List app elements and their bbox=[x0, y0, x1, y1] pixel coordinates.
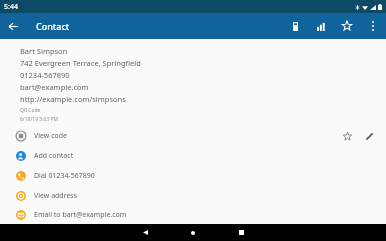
staticText: 742 Evergreen Terrace, Springfield bbox=[20, 58, 141, 68]
button[interactable]: Back bbox=[0, 13, 26, 39]
button[interactable]: Add contact bbox=[0, 146, 386, 166]
staticText: QR Code bbox=[20, 107, 41, 114]
button[interactable]: Back bbox=[131, 224, 159, 241]
staticText: Add contact bbox=[34, 151, 74, 161]
button[interactable]: More options bbox=[360, 13, 386, 39]
staticText: Email to bart@example.com bbox=[34, 210, 127, 220]
staticText: Contact bbox=[36, 20, 70, 32]
staticText: 5:44 bbox=[4, 2, 18, 12]
staticText: http://example.com/simpsons bbox=[20, 94, 126, 104]
button[interactable]: Home bbox=[179, 224, 207, 241]
button[interactable]: Edit bbox=[358, 126, 380, 146]
button[interactable]: Email to bart@example.com bbox=[0, 206, 386, 224]
button[interactable]: Copy bbox=[282, 13, 308, 39]
button[interactable]: Recent apps bbox=[227, 224, 255, 241]
button[interactable]: View code bbox=[0, 126, 336, 146]
staticText: 01234-567890 bbox=[20, 70, 70, 80]
staticText: bart@example.com bbox=[20, 82, 89, 92]
staticText: View code bbox=[34, 131, 67, 141]
staticText: Dial 01234-567890 bbox=[34, 171, 95, 181]
button[interactable]: Favorite bbox=[334, 13, 360, 39]
button[interactable]: Dial 01234-567890 bbox=[0, 166, 386, 186]
staticText: Bart Simpson bbox=[20, 46, 68, 56]
button[interactable]: Favorite bbox=[336, 126, 358, 146]
button[interactable]: Statistics bbox=[308, 13, 334, 39]
staticText: 6/18/19 5:03 PM bbox=[20, 116, 59, 123]
button[interactable]: View address bbox=[0, 186, 386, 206]
staticText: View address bbox=[34, 191, 78, 201]
